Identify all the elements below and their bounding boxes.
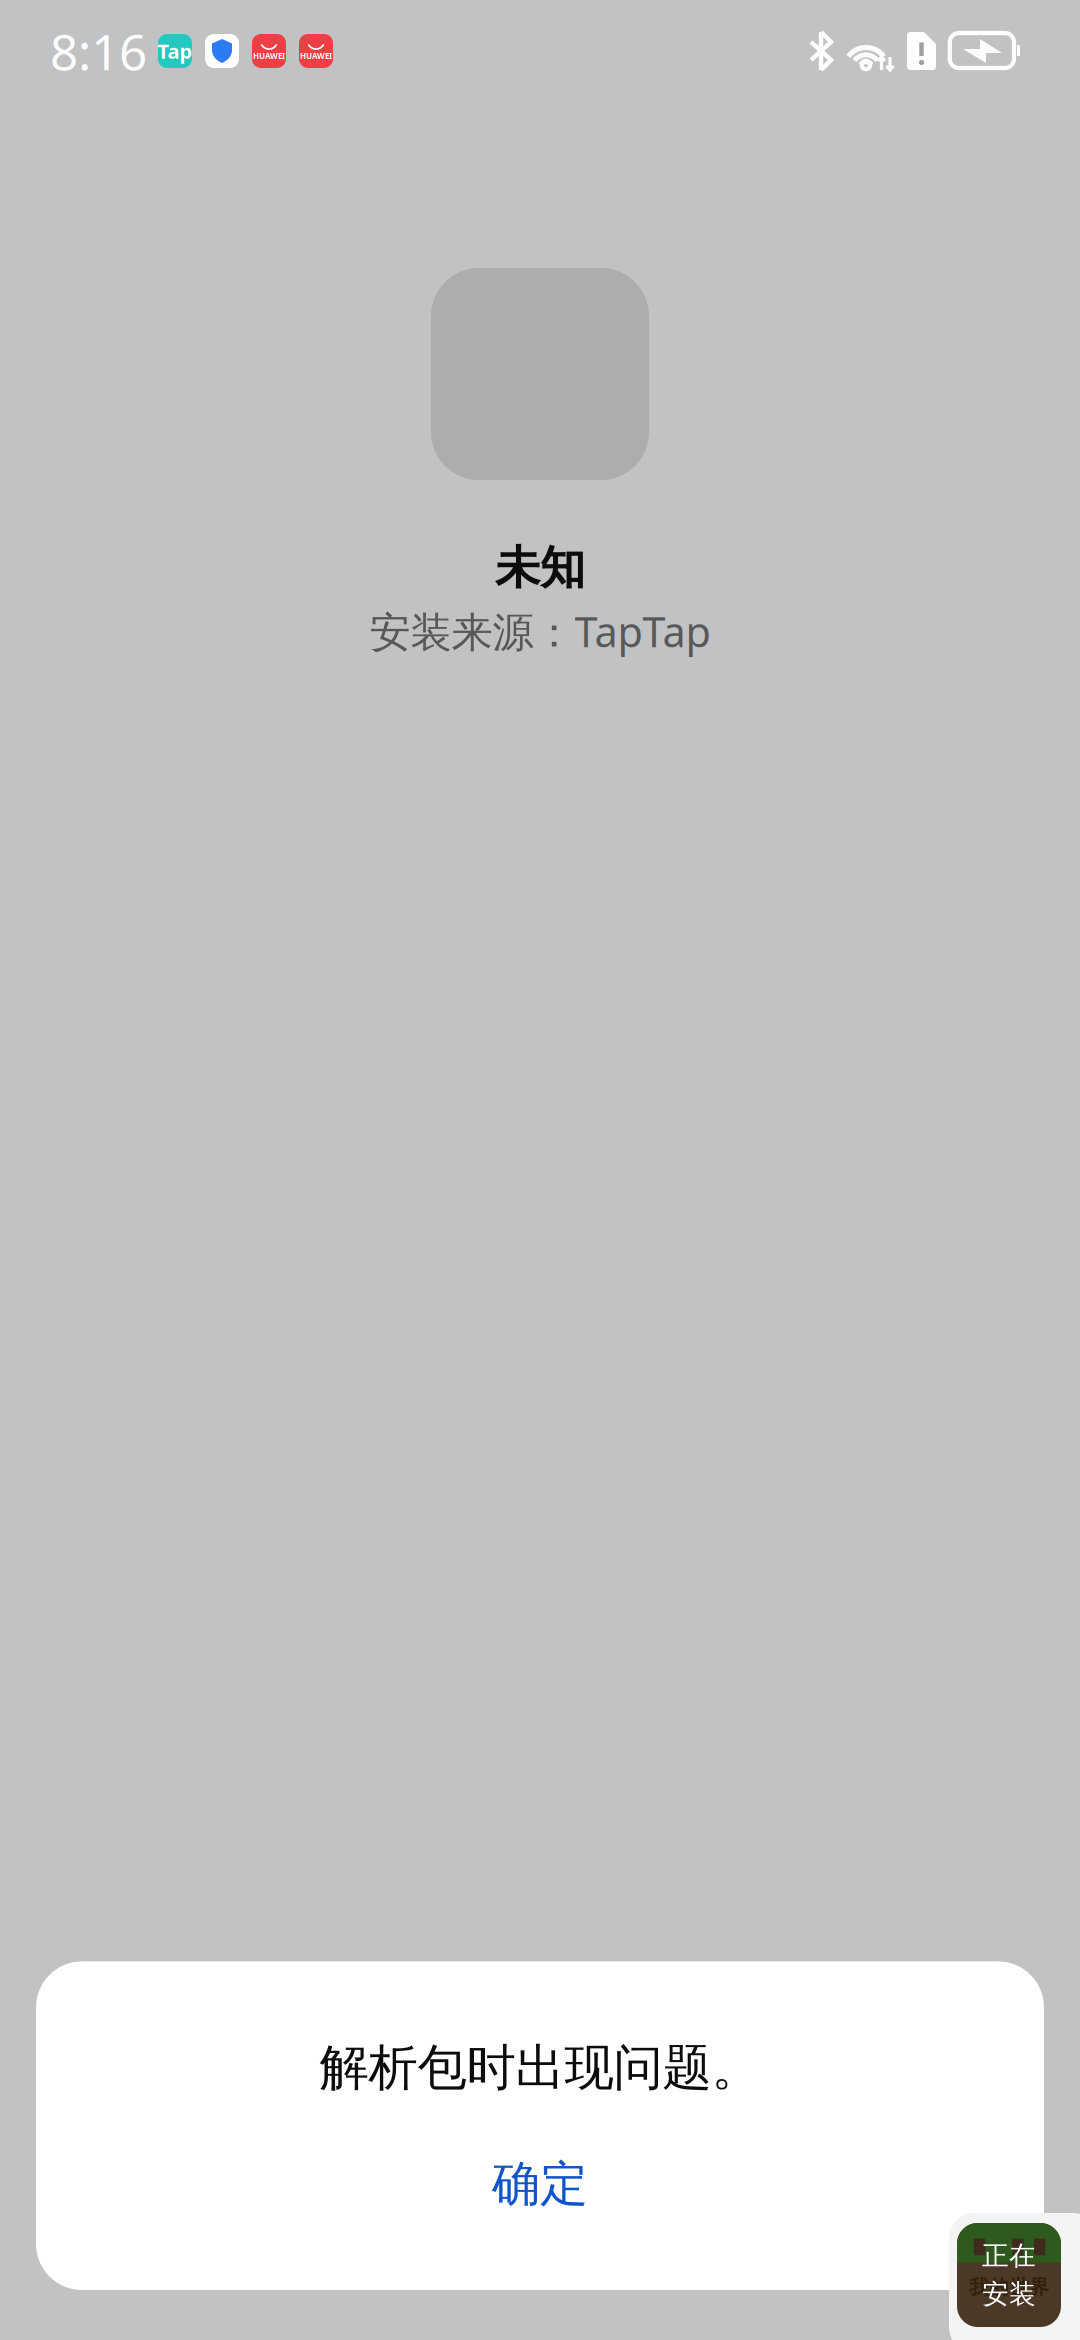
staticText: 我的世界 bbox=[969, 2275, 1049, 2300]
staticText: 8:16 bbox=[50, 18, 147, 84]
staticText: 安装 bbox=[982, 2278, 1036, 2311]
staticText: 解析包时出现问题。 bbox=[319, 2037, 760, 2098]
staticText: Tap bbox=[157, 38, 192, 64]
staticText: HUAWEI bbox=[253, 51, 285, 61]
button[interactable]: 正在安装 bbox=[949, 2213, 1080, 2340]
staticText: 未知 bbox=[495, 540, 585, 596]
button[interactable]: 确定 bbox=[36, 2156, 1044, 2212]
staticText: 确定 bbox=[492, 2154, 588, 2213]
staticText: 安装来源：TapTap bbox=[369, 604, 710, 659]
staticText: HUAWEI bbox=[300, 51, 332, 61]
staticText: 正在 bbox=[982, 2239, 1036, 2272]
